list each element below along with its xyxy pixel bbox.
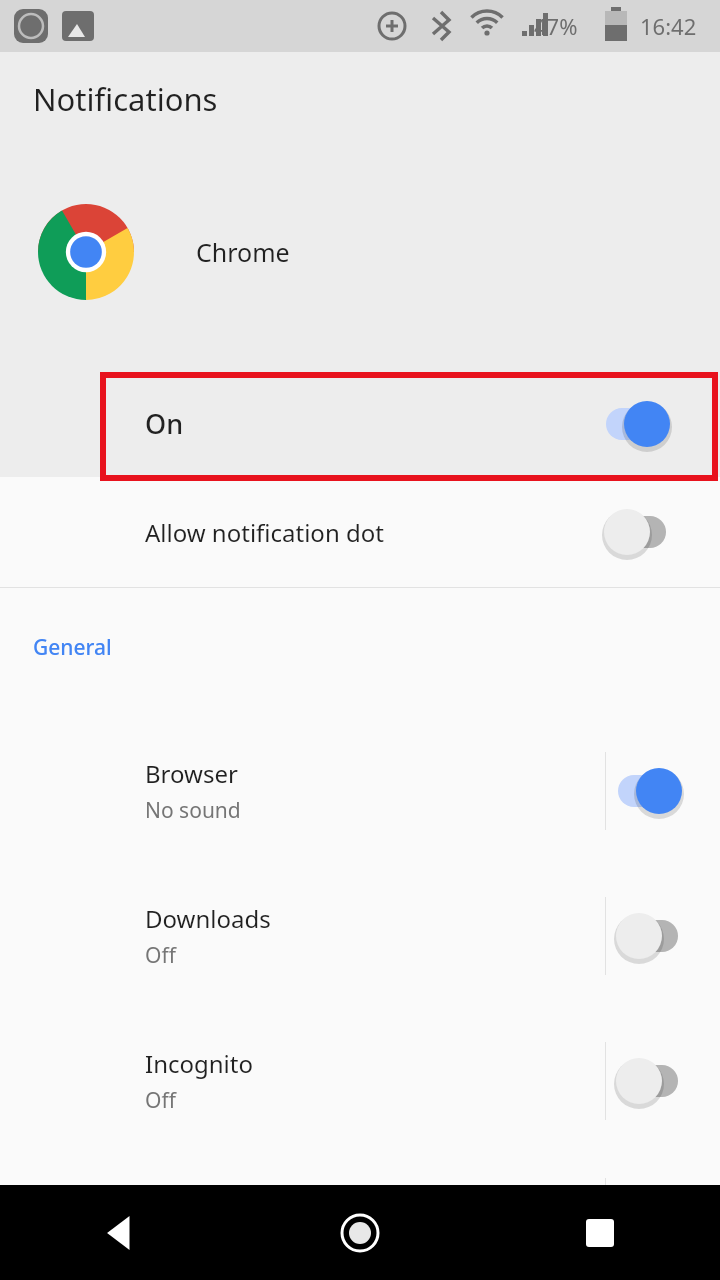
button[interactable]: Toggle on: [610, 765, 686, 817]
button[interactable]: Recent apps: [480, 1185, 720, 1280]
button[interactable]: Toggle on: [598, 398, 674, 450]
staticText: Media: [145, 1183, 215, 1216]
button[interactable]: Toggle off: [598, 506, 674, 558]
button[interactable]: Home: [240, 1185, 480, 1280]
staticText: Off: [145, 1086, 176, 1115]
button[interactable]: Toggle off: [610, 910, 686, 962]
button[interactable]: Media: [0, 1153, 720, 1280]
staticText: Allow notification dot: [145, 516, 384, 549]
staticText: On: [145, 405, 184, 442]
button[interactable]: Browser: [0, 718, 720, 863]
button[interactable]: Downloads: [0, 863, 720, 1008]
button[interactable]: Back: [0, 1185, 240, 1280]
button[interactable]: Chrome: [0, 197, 720, 307]
staticText: General: [33, 633, 112, 662]
staticText: No sound: [145, 796, 241, 825]
staticText: Chrome: [196, 235, 290, 269]
button[interactable]: Allow notification dot: [0, 477, 720, 587]
button[interactable]: On: [0, 370, 720, 477]
button[interactable]: Incognito: [0, 1008, 720, 1153]
button[interactable]: Toggle off: [610, 1055, 686, 1107]
staticText: Incognito: [145, 1047, 253, 1080]
staticText: Notifications: [33, 78, 218, 120]
staticText: Browser: [145, 757, 238, 790]
staticText: 16:42: [640, 11, 697, 41]
staticText: Downloads: [145, 902, 271, 935]
button[interactable]: Toggle off: [610, 1191, 686, 1243]
staticText: Off: [145, 941, 176, 970]
staticText: 47%: [534, 11, 578, 41]
